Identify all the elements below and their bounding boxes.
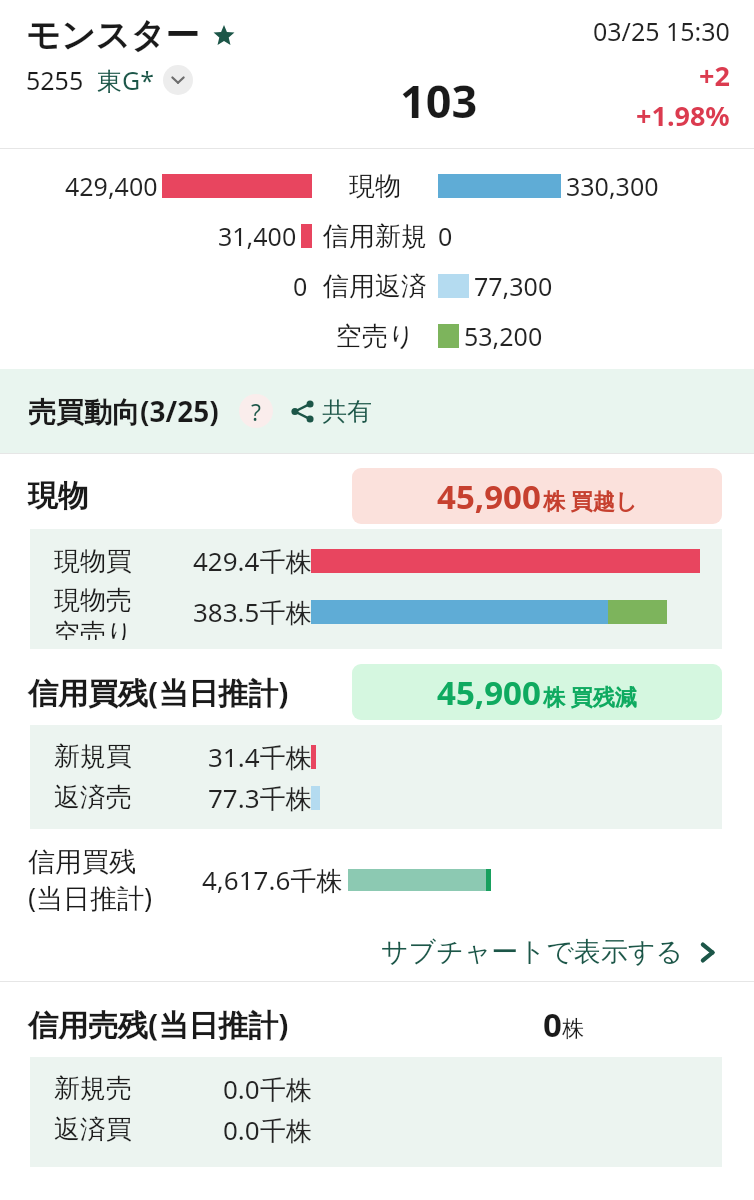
staticText: 77,300 [474, 269, 553, 303]
staticText: 45,900 [437, 474, 541, 519]
staticText: 信用返済 [323, 270, 427, 303]
staticText: 03/25 15:30 [593, 14, 730, 48]
staticText: 現物 [28, 477, 88, 515]
button[interactable]: サブチャートで表示する [381, 935, 718, 969]
staticText: モンスター [26, 14, 200, 57]
button[interactable]: 共有 [289, 396, 372, 427]
staticText: 新規買 [54, 740, 132, 773]
staticText: 現物買 [54, 545, 132, 578]
staticText: 共有 [322, 396, 372, 427]
staticText: 0 [293, 269, 308, 303]
button[interactable]: ヘルプ [239, 394, 273, 428]
staticText: 429,400 [65, 169, 158, 203]
staticText: 現物売 [54, 584, 132, 617]
staticText: 4,617.6千株 [202, 862, 343, 898]
staticText: 信用買残(当日推計) [28, 672, 289, 713]
staticText: 株 買残減 [543, 681, 637, 711]
staticText: 330,300 [566, 169, 659, 203]
button[interactable]: お気に入り [210, 22, 238, 50]
staticText: 空売り [54, 617, 133, 640]
staticText: (当日推計) [28, 879, 153, 916]
staticText: 31.4千株 [208, 739, 312, 775]
staticText: 5255 [26, 63, 84, 97]
staticText: 53,200 [464, 319, 543, 353]
staticText: 0.0千株 [223, 1071, 312, 1107]
staticText: 空売り [336, 320, 415, 353]
staticText: +1.98% [636, 97, 730, 134]
staticText: 45,900 [437, 670, 541, 715]
staticText: 信用買残 [28, 845, 136, 879]
staticText: 383.5千株 [193, 594, 312, 630]
staticText: 返済売 [54, 781, 132, 814]
staticText: 429.4千株 [193, 543, 312, 579]
staticText: 新規売 [54, 1072, 132, 1105]
staticText: サブチャートで表示する [381, 935, 684, 969]
staticText: 株 買越し [543, 485, 638, 515]
staticText: 現物 [349, 170, 401, 203]
staticText: 売買動向(3/25) [28, 392, 219, 430]
button[interactable]: 市場切替 [163, 65, 193, 95]
staticText: 東G* [97, 63, 154, 97]
staticText: 31,400 [218, 219, 297, 253]
staticText: 103 [400, 70, 478, 131]
staticText: 信用売残(当日推計) [28, 1004, 289, 1045]
staticText: 0 [543, 1002, 562, 1047]
staticText: 0.0千株 [223, 1112, 312, 1148]
staticText: 株 [562, 1015, 584, 1043]
staticText: 0 [438, 219, 453, 253]
staticText: 信用新規 [323, 220, 427, 253]
staticText: +2 [699, 57, 730, 94]
staticText: ? [251, 396, 261, 427]
staticText: 返済買 [54, 1113, 132, 1146]
staticText: 77.3千株 [208, 780, 312, 816]
